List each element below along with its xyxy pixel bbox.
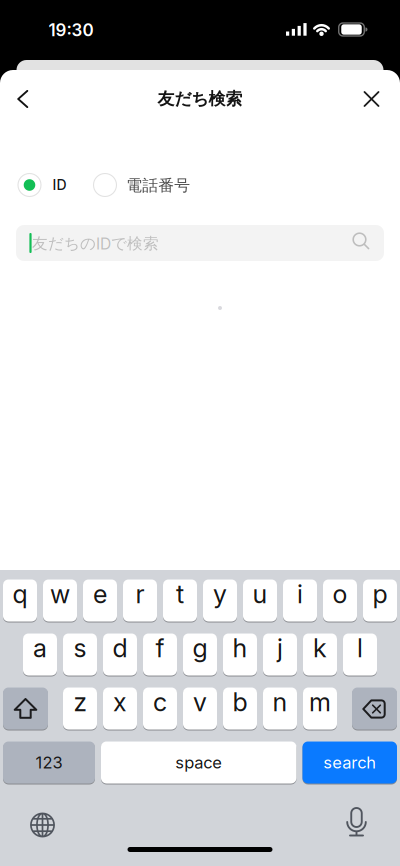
staticText: u bbox=[252, 579, 267, 609]
staticText: b bbox=[232, 687, 247, 717]
staticText: o bbox=[332, 579, 347, 609]
staticText: e bbox=[93, 579, 107, 609]
staticText: g bbox=[192, 633, 207, 663]
staticText: i bbox=[297, 579, 303, 609]
staticText: 友だちのIDで検索 bbox=[32, 234, 159, 253]
staticText: r bbox=[135, 579, 144, 609]
staticText: x bbox=[113, 687, 127, 717]
staticText: m bbox=[309, 687, 331, 717]
staticText: l bbox=[357, 633, 363, 663]
staticText: t bbox=[176, 579, 184, 609]
staticText: h bbox=[232, 633, 247, 663]
staticText: w bbox=[50, 579, 70, 609]
staticText: ID bbox=[52, 176, 66, 193]
staticText: n bbox=[272, 687, 287, 717]
staticText: c bbox=[153, 687, 167, 717]
staticText: 19:30 bbox=[48, 20, 93, 40]
staticText: s bbox=[73, 633, 86, 663]
staticText: j bbox=[277, 633, 283, 663]
staticText: search bbox=[323, 752, 376, 772]
staticText: 123 bbox=[35, 752, 62, 772]
staticText: d bbox=[112, 633, 127, 663]
staticText: k bbox=[313, 633, 327, 663]
staticText: f bbox=[155, 633, 164, 663]
staticText: v bbox=[193, 687, 207, 717]
staticText: 電話番号 bbox=[126, 175, 190, 195]
staticText: 友だち検索 bbox=[157, 88, 242, 110]
staticText: z bbox=[73, 687, 86, 717]
staticText: a bbox=[33, 633, 47, 663]
staticText: q bbox=[12, 579, 27, 609]
staticText: y bbox=[213, 579, 227, 609]
staticText: space bbox=[175, 752, 222, 772]
staticText: p bbox=[372, 579, 387, 609]
